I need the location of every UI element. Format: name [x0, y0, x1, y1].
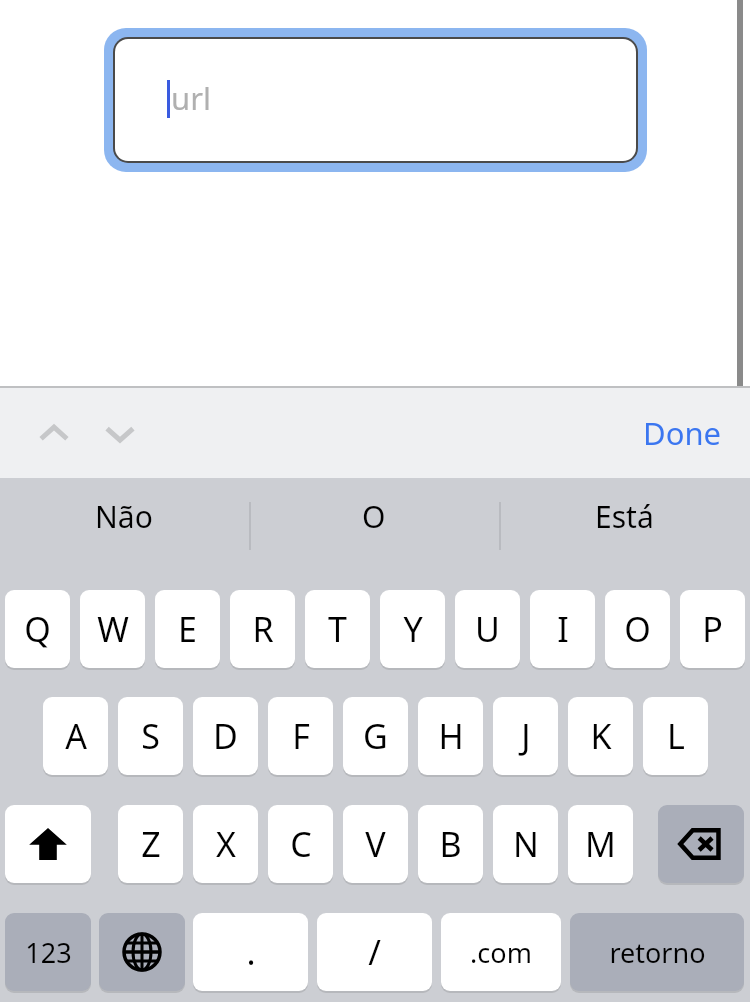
staticText: 123 [25, 934, 72, 971]
button[interactable]: I [530, 590, 595, 668]
button[interactable]: W [80, 590, 145, 668]
staticText: . [246, 929, 256, 975]
staticText: Done [643, 412, 722, 454]
button[interactable]: U [455, 590, 520, 668]
staticText: Y [403, 606, 423, 652]
button[interactable]: R [230, 590, 295, 668]
staticText: G [363, 713, 388, 759]
button[interactable]: . [193, 913, 308, 991]
staticText: U [475, 606, 500, 652]
button[interactable]: Change keyboard [99, 913, 185, 991]
button[interactable]: C [268, 805, 333, 883]
staticText: H [438, 713, 464, 759]
staticText: T [328, 606, 347, 652]
button[interactable]: Backspace [658, 805, 744, 883]
staticText: O [624, 606, 651, 652]
staticText: I [557, 606, 569, 652]
button[interactable]: M [568, 805, 633, 883]
button[interactable]: P [680, 590, 745, 668]
staticText: A [65, 713, 87, 759]
button[interactable]: 123 [5, 913, 91, 991]
staticText: / [368, 929, 381, 975]
staticText: X [216, 821, 236, 867]
staticText: S [141, 713, 160, 759]
button[interactable]: Q [5, 590, 70, 668]
button[interactable]: Não [0, 480, 248, 552]
button[interactable]: Done [630, 402, 734, 464]
staticText: B [439, 821, 462, 867]
button[interactable]: .com [441, 913, 561, 991]
button[interactable]: S [118, 697, 183, 775]
staticText: Não [95, 496, 153, 537]
staticText: F [292, 713, 310, 759]
button[interactable]: L [643, 697, 708, 775]
button[interactable]: Z [118, 805, 183, 883]
button[interactable]: T [305, 590, 370, 668]
button[interactable]: X [193, 805, 258, 883]
button[interactable]: F [268, 697, 333, 775]
staticText: L [667, 713, 685, 759]
button[interactable]: O [605, 590, 670, 668]
button[interactable]: Y [380, 590, 445, 668]
button[interactable]: E [155, 590, 220, 668]
staticText: K [590, 713, 612, 759]
staticText: R [252, 606, 274, 652]
staticText: D [213, 713, 238, 759]
button[interactable]: Está [500, 480, 748, 552]
button[interactable]: V [343, 805, 408, 883]
button[interactable]: / [317, 913, 432, 991]
button[interactable]: N [493, 805, 558, 883]
staticText: C [290, 821, 312, 867]
button[interactable]: H [418, 697, 483, 775]
staticText: W [97, 606, 129, 652]
staticText: V [365, 821, 386, 867]
button[interactable]: B [418, 805, 483, 883]
staticText: url [171, 77, 211, 119]
staticText: .com [470, 934, 532, 971]
staticText: P [702, 606, 723, 652]
button[interactable]: A [43, 697, 108, 775]
button[interactable]: K [568, 697, 633, 775]
staticText: retorno [609, 934, 706, 971]
button[interactable]: url [104, 28, 647, 172]
button[interactable]: Previous field [26, 406, 82, 462]
staticText: M [585, 821, 616, 867]
staticText: E [178, 606, 197, 652]
button[interactable]: Shift [5, 805, 91, 883]
button[interactable]: D [193, 697, 258, 775]
button[interactable]: retorno [570, 913, 744, 991]
staticText: Está [595, 496, 654, 537]
staticText: N [513, 821, 539, 867]
staticText: Q [24, 606, 51, 652]
staticText: O [362, 496, 386, 537]
button[interactable]: O [250, 480, 498, 552]
staticText: Z [141, 821, 161, 867]
button[interactable]: G [343, 697, 408, 775]
button[interactable]: J [493, 697, 558, 775]
staticText: J [521, 713, 531, 759]
button[interactable]: Next field [92, 406, 148, 462]
